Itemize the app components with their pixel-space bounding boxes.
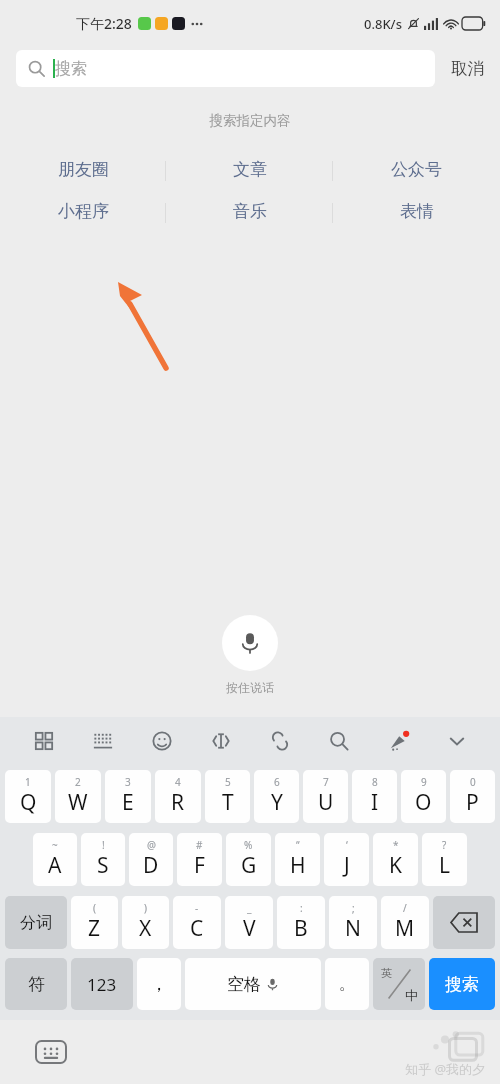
staticText: Z <box>88 914 101 943</box>
staticText: ) <box>144 901 147 915</box>
staticText: K <box>389 851 402 880</box>
staticText: 中 <box>405 987 418 1003</box>
staticText: T <box>222 788 234 817</box>
button[interactable]: 表情 <box>333 201 500 257</box>
staticText: 123 <box>87 973 117 996</box>
staticText: Q <box>20 788 37 817</box>
button[interactable]: Hide <box>427 717 486 765</box>
staticText: “ <box>296 838 300 852</box>
staticText: F <box>194 851 205 880</box>
button[interactable]: 小程序 <box>0 201 166 257</box>
staticText: ? <box>442 838 447 852</box>
button[interactable]: 中英文切换 <box>373 958 425 1010</box>
button[interactable]: 。 <box>325 958 369 1010</box>
button[interactable]: _ <box>225 896 273 949</box>
button[interactable]: # <box>177 833 222 886</box>
button[interactable]: 符 <box>5 958 67 1010</box>
staticText: H <box>290 851 306 880</box>
button[interactable]: ; <box>329 896 377 949</box>
button[interactable]: 5 <box>205 770 250 823</box>
button[interactable]: Backspace <box>433 896 495 949</box>
staticText: : <box>300 901 303 915</box>
button[interactable]: 音乐 <box>166 201 333 257</box>
staticText: 英 <box>381 966 392 980</box>
button[interactable]: 8 <box>352 770 397 823</box>
button[interactable]: 2 <box>55 770 101 823</box>
staticText: U <box>318 788 334 817</box>
staticText: 5 <box>225 775 231 789</box>
staticText: 3 <box>125 775 131 789</box>
button[interactable]: 9 <box>401 770 446 823</box>
button[interactable]: Apps <box>14 717 73 765</box>
staticText: ; <box>352 901 355 915</box>
button[interactable]: : <box>277 896 325 949</box>
staticText: R <box>171 788 185 817</box>
button[interactable]: Search <box>309 717 368 765</box>
button[interactable]: 朋友圈 <box>0 159 166 201</box>
staticText: ~ <box>52 838 58 852</box>
staticText: P <box>466 788 479 817</box>
button[interactable]: Keyboard switch <box>34 1035 68 1069</box>
button[interactable]: ? <box>422 833 467 886</box>
button[interactable]: @ <box>129 833 173 886</box>
staticText: 搜索 <box>445 974 479 995</box>
button[interactable]: 分词 <box>5 896 67 949</box>
staticText: Y <box>271 788 283 817</box>
staticText: 符 <box>28 974 45 995</box>
staticText: 搜索指定内容 <box>0 112 500 129</box>
button[interactable]: % <box>226 833 271 886</box>
button[interactable]: 0 <box>450 770 495 823</box>
button[interactable]: ‘ <box>324 833 369 886</box>
button[interactable]: 7 <box>303 770 348 823</box>
button[interactable]: Keyboard <box>73 717 132 765</box>
staticText: # <box>196 838 203 852</box>
staticText: J <box>344 851 350 880</box>
button[interactable]: 3 <box>105 770 151 823</box>
staticText: 0.8K/s <box>364 15 402 33</box>
staticText: X <box>139 914 152 943</box>
staticText: N <box>345 914 361 943</box>
staticText: ， <box>150 973 168 996</box>
button[interactable]: 搜索 <box>429 958 495 1010</box>
button[interactable]: 空格 <box>185 958 321 1010</box>
staticText: S <box>97 851 109 880</box>
staticText: 分词 <box>20 913 52 933</box>
staticText: L <box>439 851 451 880</box>
button[interactable]: ， <box>137 958 181 1010</box>
button[interactable]: Brush <box>368 717 427 765</box>
button[interactable]: 按住说话 <box>222 615 278 671</box>
staticText: 0 <box>470 775 476 789</box>
button[interactable]: Text select <box>191 717 250 765</box>
button[interactable]: ! <box>81 833 125 886</box>
staticText: 取消 <box>451 58 484 79</box>
staticText: 8 <box>372 775 378 789</box>
button[interactable]: ) <box>122 896 169 949</box>
button[interactable]: 4 <box>155 770 201 823</box>
staticText: E <box>122 788 134 817</box>
button[interactable]: Emoji <box>132 717 191 765</box>
button[interactable]: - <box>173 896 221 949</box>
staticText: 搜索 <box>55 59 87 79</box>
button[interactable]: ~ <box>33 833 77 886</box>
button[interactable]: / <box>381 896 429 949</box>
button[interactable]: 123 <box>71 958 133 1010</box>
staticText: - <box>195 901 199 915</box>
staticText: @ <box>147 838 156 852</box>
staticText: G <box>241 851 257 880</box>
staticText: A <box>48 851 62 880</box>
button[interactable]: ( <box>71 896 118 949</box>
button[interactable]: 公众号 <box>333 159 500 201</box>
button[interactable]: “ <box>275 833 320 886</box>
staticText: 1 <box>25 775 31 789</box>
button[interactable]: 1 <box>5 770 51 823</box>
button[interactable]: Clip <box>250 717 309 765</box>
staticText: 下午2:28 <box>76 14 132 33</box>
button[interactable]: * <box>373 833 418 886</box>
staticText: M <box>395 914 415 943</box>
staticText: 6 <box>274 775 280 789</box>
button[interactable]: 搜索 <box>16 50 435 87</box>
button[interactable]: 取消 <box>435 58 500 79</box>
staticText: 按住说话 <box>226 680 274 695</box>
button[interactable]: 6 <box>254 770 299 823</box>
button[interactable]: 文章 <box>166 159 333 201</box>
